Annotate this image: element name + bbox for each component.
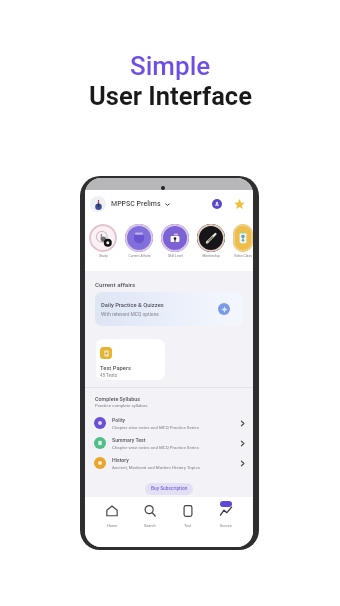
staticText: Ancient, Medieval and Modern History Top… — [112, 465, 200, 470]
button[interactable]: Rewards — [233, 198, 245, 210]
button[interactable]: Mentorship — [197, 224, 225, 258]
button[interactable]: Test Papers — [96, 339, 165, 380]
staticText: 45 Tests — [100, 373, 118, 378]
button[interactable]: Polity — [85, 413, 253, 433]
staticText: Daily Practice & Quizzes — [101, 302, 164, 309]
staticText: Buy Subscription — [151, 486, 188, 492]
button[interactable]: Skill Level — [161, 224, 189, 258]
staticText: With relevant MCQ options — [101, 311, 159, 317]
staticText: MPPSC Prelims — [111, 200, 161, 208]
staticText: Chapter wise notes and MCQ Practice Seri… — [112, 445, 199, 450]
button[interactable]: Search — [131, 497, 169, 547]
button[interactable]: MPPSC Prelims — [90, 196, 170, 212]
button[interactable]: Profile — [212, 199, 222, 209]
staticText: Current affairs — [95, 281, 136, 288]
staticText: Chapter wise notes and MCQ Practice Seri… — [112, 425, 199, 430]
button[interactable]: Test — [169, 497, 207, 547]
button[interactable]: Home — [93, 497, 131, 547]
staticText: Mentorship — [202, 254, 220, 258]
button[interactable]: History — [85, 453, 253, 473]
button[interactable]: Current Affairs — [125, 224, 153, 258]
button[interactable]: Buy Subscription — [145, 483, 193, 495]
staticText: Test Papers — [100, 365, 131, 372]
staticText: Polity — [112, 417, 126, 423]
staticText: Study — [99, 254, 108, 258]
staticText: User Interface — [89, 81, 252, 111]
button[interactable]: Study — [89, 224, 117, 258]
staticText: Skill Level — [168, 254, 183, 258]
staticText: Scores — [220, 523, 232, 527]
staticText: Home — [107, 523, 118, 527]
staticText: History — [112, 457, 129, 463]
staticText: Practice complete syllabus — [95, 403, 148, 408]
staticText: Simple — [130, 51, 211, 81]
staticText: Test — [184, 523, 192, 527]
button[interactable]: Summary Test — [85, 433, 253, 453]
staticText: Video Class — [234, 254, 252, 258]
button[interactable]: Video Class — [233, 224, 253, 258]
staticText: Current Affairs — [128, 254, 151, 258]
button[interactable]: Scores — [207, 497, 245, 547]
staticText: Summary Test — [112, 437, 146, 443]
staticText: Search — [144, 523, 156, 527]
button[interactable]: Daily Practice & Quizzes — [95, 292, 243, 326]
staticText: Complete Syllabus — [95, 396, 140, 402]
